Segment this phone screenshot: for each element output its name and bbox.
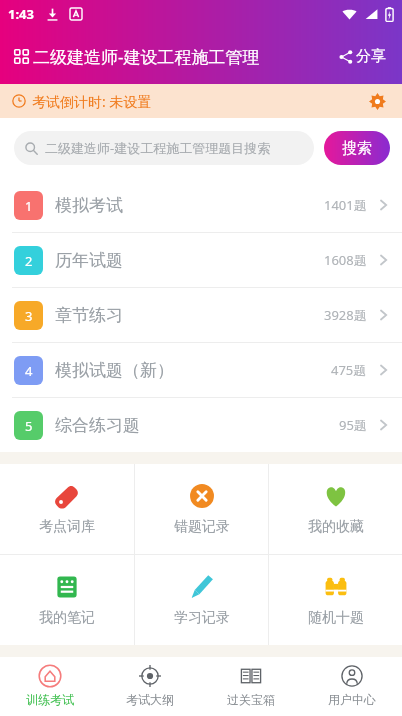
staticText: 历年试题 bbox=[55, 250, 123, 271]
button[interactable]: 训练考试 bbox=[0, 657, 100, 713]
staticText: 1 bbox=[25, 197, 33, 215]
staticText: 章节练习 bbox=[55, 305, 123, 326]
staticText: 考点词库 bbox=[39, 518, 95, 536]
button[interactable]: 我的笔记 bbox=[0, 555, 134, 645]
button[interactable]: 考点词库 bbox=[0, 464, 134, 554]
button[interactable]: Settings bbox=[364, 88, 390, 114]
staticText: 1608题 bbox=[324, 251, 367, 269]
staticText: 5 bbox=[25, 417, 33, 435]
staticText: 4 bbox=[25, 362, 33, 380]
staticText: 学习记录 bbox=[174, 609, 230, 627]
staticText: 95题 bbox=[339, 416, 367, 434]
button[interactable]: 二级建造师-建设工程施工管理题目搜索 bbox=[14, 131, 314, 165]
staticText: 考试大纲 bbox=[126, 692, 174, 707]
staticText: 3 bbox=[25, 307, 33, 325]
staticText: 考试倒计时: 未设置 bbox=[32, 92, 152, 111]
staticText: 2 bbox=[25, 252, 33, 270]
staticText: 3928题 bbox=[324, 306, 367, 324]
staticText: 搜索 bbox=[342, 139, 372, 158]
staticText: 分享 bbox=[356, 47, 386, 66]
staticText: 错题记录 bbox=[174, 518, 230, 536]
staticText: 随机十题 bbox=[308, 609, 364, 627]
button[interactable]: 用户中心 bbox=[301, 657, 402, 713]
staticText: 综合练习题 bbox=[55, 415, 140, 436]
button[interactable]: 随机十题 bbox=[269, 555, 402, 645]
button[interactable]: 1 bbox=[0, 178, 402, 232]
button[interactable]: 3 bbox=[0, 288, 402, 342]
staticText: 训练考试 bbox=[26, 692, 74, 707]
staticText: 用户中心 bbox=[328, 692, 376, 707]
button[interactable]: 2 bbox=[0, 233, 402, 287]
button[interactable]: 我的收藏 bbox=[269, 464, 402, 554]
staticText: 过关宝箱 bbox=[227, 692, 275, 707]
button[interactable]: 搜索 bbox=[324, 131, 390, 165]
button[interactable]: 错题记录 bbox=[135, 464, 268, 554]
button[interactable]: 考试大纲 bbox=[100, 657, 200, 713]
staticText: 模拟试题（新） bbox=[55, 360, 174, 381]
staticText: 1401题 bbox=[324, 196, 367, 214]
staticText: 我的收藏 bbox=[308, 518, 364, 536]
staticText: 475题 bbox=[331, 361, 367, 379]
staticText: 我的笔记 bbox=[39, 609, 95, 627]
staticText: 二级建造师-建设工程施工管理 bbox=[33, 45, 260, 68]
button[interactable]: 学习记录 bbox=[135, 555, 268, 645]
button[interactable]: 5 bbox=[0, 398, 402, 452]
button[interactable]: 分享 bbox=[333, 41, 392, 72]
button[interactable]: 过关宝箱 bbox=[200, 657, 301, 713]
staticText: 二级建造师-建设工程施工管理题目搜索 bbox=[45, 139, 271, 157]
staticText: 1:43 bbox=[8, 5, 34, 23]
button[interactable]: 4 bbox=[0, 343, 402, 397]
staticText: 模拟考试 bbox=[55, 195, 123, 216]
